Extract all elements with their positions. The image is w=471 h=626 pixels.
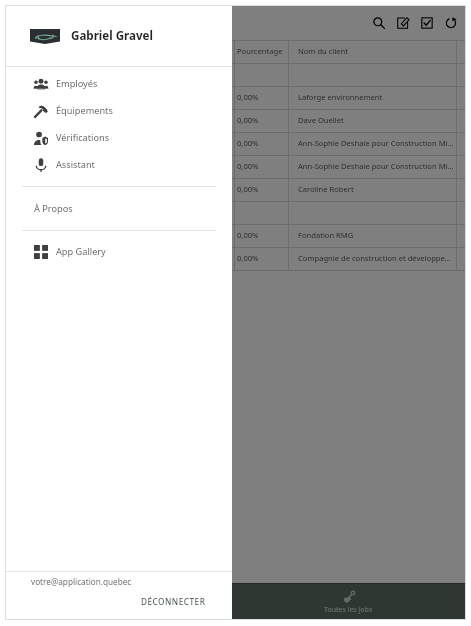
staticText: Laforge environnement: [298, 92, 456, 102]
staticText: Toutes les jobs: [324, 605, 373, 615]
staticText: 0,00%: [237, 253, 288, 263]
button[interactable]: 0,00%: [232, 179, 465, 202]
button[interactable]: Select all: [415, 7, 439, 39]
button[interactable]: 0,00%: [232, 87, 465, 110]
button[interactable]: Search: [367, 7, 391, 39]
staticText: App Gallery: [56, 245, 106, 258]
staticText: 0,00%: [237, 184, 288, 194]
staticText: Nom du client: [298, 46, 456, 56]
staticText: Fondation RMG: [298, 230, 456, 240]
staticText: Dave Ouellet: [298, 115, 456, 125]
staticText: DÉCONNECTER: [141, 596, 206, 607]
staticText: Compagnie de construction et développeme…: [298, 253, 456, 263]
button[interactable]: Edit: [391, 7, 415, 39]
staticText: 0,00%: [237, 230, 288, 240]
staticText: Pourcentage: [237, 46, 288, 56]
staticText: Assistant: [56, 158, 95, 171]
button[interactable]: À Propos: [6, 187, 232, 230]
staticText: Équipements: [56, 104, 113, 117]
button[interactable]: Refresh: [439, 7, 463, 39]
button[interactable]: 0,00%: [232, 110, 465, 133]
button[interactable]: 0,00%: [232, 248, 465, 271]
button[interactable]: Gabriel Gravel: [6, 6, 232, 66]
button[interactable]: Employés: [6, 70, 232, 97]
staticText: Gabriel Gravel: [71, 28, 153, 44]
staticText: votre@application.quebec: [31, 576, 132, 587]
button[interactable]: 0,00%: [232, 225, 465, 248]
button[interactable]: Assistant: [6, 151, 232, 178]
button[interactable]: App Gallery: [6, 238, 232, 265]
button[interactable]: Équipements: [6, 97, 232, 124]
staticText: 0,00%: [237, 161, 288, 171]
staticText: Vérifications: [56, 131, 110, 144]
button[interactable]: DÉCONNECTER: [131, 587, 232, 619]
staticText: 0,00%: [237, 138, 288, 148]
button: Gabriel Gravel: [6, 6, 232, 619]
staticText: Ann-Sophie Deshaie pour Construction Mic…: [298, 161, 456, 171]
staticText: Caroline Robert: [298, 184, 456, 194]
button[interactable]: Vérifications: [6, 124, 232, 151]
staticText: Employés: [56, 77, 98, 90]
staticText: À Propos: [34, 202, 73, 215]
button[interactable]: 0,00%: [232, 156, 465, 179]
staticText: 0,00%: [237, 92, 288, 102]
button[interactable]: Toutes les jobs: [232, 583, 465, 619]
staticText: 0,00%: [237, 115, 288, 125]
staticText: Ann-Sophie Deshaie pour Construction Mic…: [298, 138, 456, 148]
button[interactable]: 0,00%: [232, 133, 465, 156]
